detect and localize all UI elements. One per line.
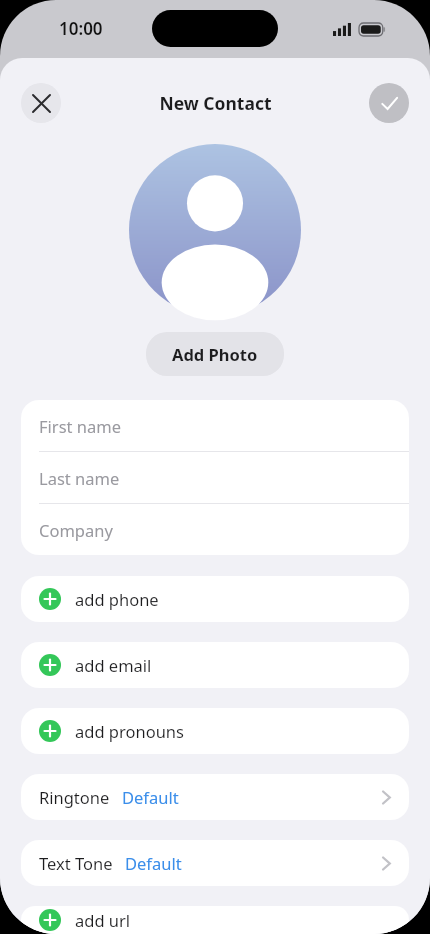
button[interactable]: Last name (21, 452, 409, 503)
button[interactable]: add url (21, 906, 409, 934)
button[interactable]: Text Tone (21, 840, 409, 886)
staticText: New Contact (159, 91, 272, 115)
button[interactable]: Add Photo (146, 332, 284, 376)
staticText: Default (122, 786, 179, 808)
staticText: 10:00 (59, 17, 103, 40)
staticText: add email (75, 654, 152, 676)
staticText: add url (75, 909, 131, 931)
button[interactable]: Done (369, 83, 409, 123)
staticText: Text Tone (39, 852, 113, 874)
button[interactable]: add email (21, 642, 409, 688)
staticText: add pronouns (75, 720, 184, 742)
button[interactable]: First name (21, 400, 409, 451)
staticText: Add Photo (172, 343, 258, 365)
staticText: Ringtone (39, 786, 110, 808)
staticText: Last name (39, 467, 120, 489)
button[interactable]: add phone (21, 576, 409, 622)
staticText: First name (39, 415, 121, 437)
button[interactable]: Ringtone (21, 774, 409, 820)
staticText: Company (39, 519, 113, 541)
button[interactable]: add pronouns (21, 708, 409, 754)
staticText: Default (125, 852, 182, 874)
staticText: add phone (75, 588, 159, 610)
button[interactable]: Close (21, 83, 61, 123)
button[interactable]: Company (21, 504, 409, 555)
